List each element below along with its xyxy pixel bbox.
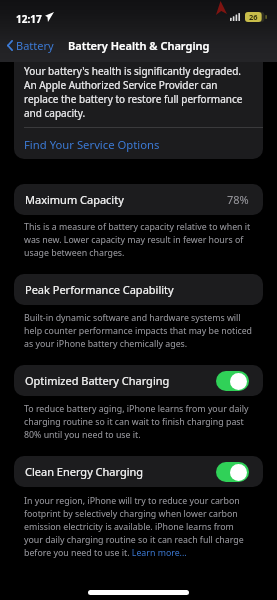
button[interactable]: Maximum Capacity — [14, 184, 263, 215]
button[interactable]: Battery — [0, 35, 62, 56]
staticText: 12:17 — [16, 12, 42, 26]
other: Optimized Battery Charging, on — [216, 371, 249, 391]
staticText: Maximum Capacity — [25, 192, 124, 207]
button[interactable]: Find Your Service Options — [14, 128, 263, 159]
staticText: In your region, iPhone will try to reduc… — [24, 495, 253, 559]
button[interactable]: Peak Performance Capability — [14, 274, 263, 305]
staticText: This is a measure of battery capacity re… — [24, 221, 253, 259]
other: Clean Energy Charging, on — [216, 462, 249, 482]
staticText: Clean Energy Charging — [25, 464, 144, 479]
staticText: Optimized Battery Charging — [25, 373, 170, 388]
staticText: 26 — [249, 12, 258, 21]
button[interactable]: Clean Energy Charging — [14, 456, 263, 487]
staticText: Find Your Service Options — [24, 137, 160, 152]
staticText: Your battery's health is significantly d… — [24, 64, 253, 120]
staticText: Peak Performance Capability — [25, 282, 174, 297]
staticText: 78% — [227, 192, 249, 207]
staticText: Built-in dynamic software and hardware s… — [24, 312, 253, 350]
staticText: Battery Health & Charging — [68, 38, 210, 53]
button[interactable]: Optimized Battery Charging — [14, 365, 263, 396]
staticText: Battery — [16, 38, 54, 53]
staticText: To reduce battery aging, iPhone learns f… — [24, 403, 253, 441]
